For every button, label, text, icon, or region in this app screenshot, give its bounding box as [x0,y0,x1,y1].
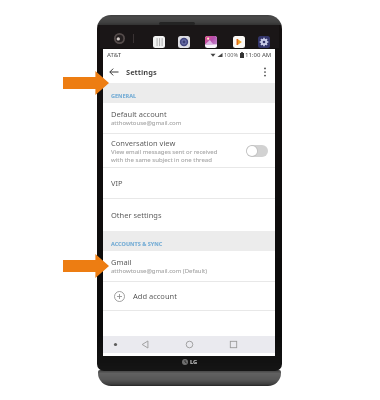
button[interactable]: BOOK [153,36,165,48]
staticText: GENERAL [111,92,137,99]
button[interactable]: SETTINGS [258,36,270,48]
staticText: AT&T [107,51,122,59]
button[interactable]: Conversation view [103,134,275,168]
button[interactable]: Menu [106,336,124,353]
button[interactable]: CAMERA [178,36,190,48]
button[interactable]: Back [106,64,122,80]
button[interactable]: Home [180,336,198,353]
staticText: Default account [111,109,167,119]
staticText: Conversation view [111,138,176,148]
button[interactable]: Default account [103,103,275,134]
button[interactable]: Gmail [103,251,275,282]
button[interactable]: GALLERY [205,36,217,48]
button[interactable]: Add account [103,282,275,311]
staticText: Other settings [111,210,162,220]
staticText: Settings [126,67,157,77]
button[interactable]: VIP [103,168,275,199]
staticText: atthowtouse@gmail.com [111,119,182,127]
staticText: with the same subject in one thread [111,156,212,164]
button[interactable]: PLAY [233,36,245,48]
staticText: Gmail [111,257,132,267]
staticText: Add account [133,291,177,301]
staticText: 100% [224,51,239,58]
staticText: ACCOUNTS & SYNC [111,240,163,247]
staticText: LG [190,358,198,366]
staticText: VIP [111,178,123,188]
staticText: 11:00 AM [245,51,272,59]
button[interactable]: Recents [224,336,242,353]
button[interactable]: Other settings [103,199,275,232]
button[interactable]: More options [258,65,272,79]
button[interactable]: Back [136,336,154,353]
staticText: atthowtouse@gmail.com (Default) [111,267,208,275]
staticText: View email messages sent or received [111,148,218,156]
